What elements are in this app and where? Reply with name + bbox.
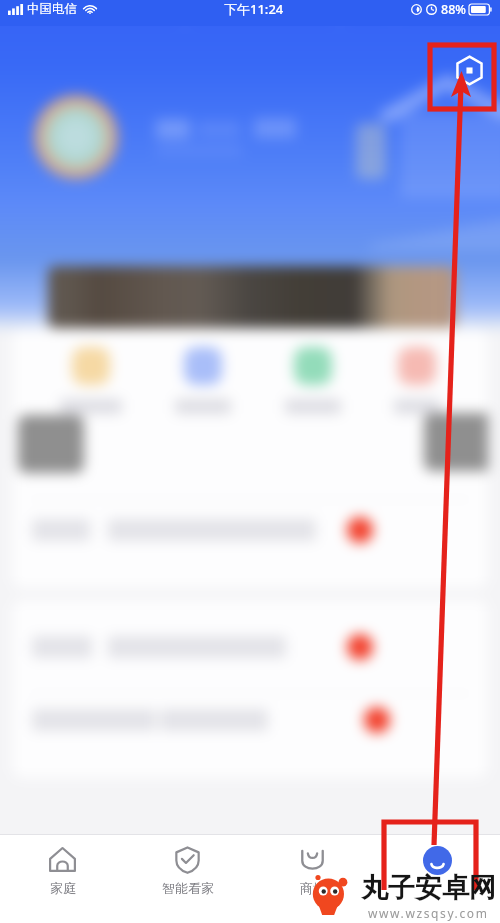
- button[interactable]: [12, 500, 488, 526]
- button[interactable]: 智能看家: [125, 835, 250, 896]
- staticText: 下午11:24: [224, 0, 284, 18]
- staticText: 智能看家: [162, 880, 214, 896]
- staticText: www.wzsqsy.com: [368, 905, 489, 921]
- button[interactable]: 智能场景: [453, 54, 486, 87]
- button[interactable]: [54, 347, 128, 414]
- staticText: 商城: [300, 880, 326, 896]
- button[interactable]: [12, 600, 488, 626]
- button[interactable]: 商城: [250, 835, 375, 896]
- button[interactable]: [48, 266, 456, 328]
- staticText: 丸子安卓网: [361, 871, 496, 905]
- button[interactable]: 家庭: [0, 835, 125, 896]
- button[interactable]: [169, 347, 237, 414]
- staticText: 中国电信: [27, 1, 77, 17]
- button[interactable]: [424, 413, 488, 471]
- button[interactable]: 我的: [375, 835, 500, 864]
- button[interactable]: [279, 347, 347, 414]
- button[interactable]: [12, 694, 488, 720]
- button[interactable]: [18, 415, 84, 473]
- button[interactable]: [388, 347, 446, 414]
- staticText: 家庭: [50, 880, 76, 896]
- staticText: 88%: [441, 1, 466, 18]
